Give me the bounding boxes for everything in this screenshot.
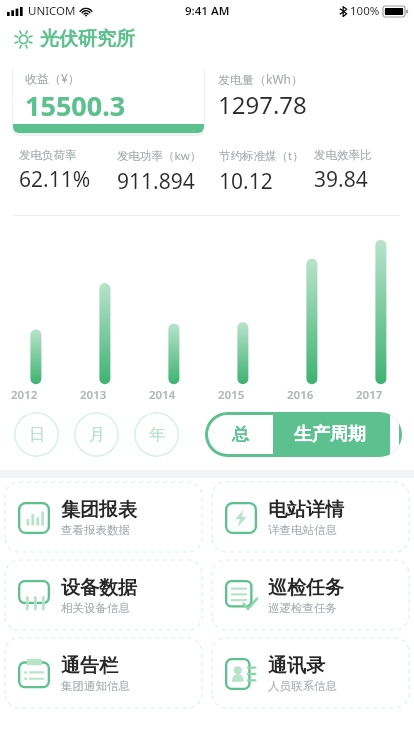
staticText: 通讯录 [268, 654, 325, 678]
staticText: 总 [232, 424, 249, 445]
staticText: 设备数据 [61, 576, 137, 600]
staticText: 发电负荷率 [19, 148, 77, 162]
button[interactable]: 总 [208, 415, 273, 454]
button[interactable]: 设备数据 [0, 556, 207, 634]
staticText: 查看报表数据 [61, 523, 130, 537]
staticText: 电站详情 [268, 498, 344, 522]
staticText: 月 [89, 425, 105, 445]
button[interactable]: 电站详情 [207, 478, 414, 556]
button[interactable]: 月 [74, 412, 119, 457]
staticText: 集团报表 [61, 498, 137, 522]
staticText: 1297.78 [218, 88, 307, 121]
button[interactable]: 日 [14, 412, 59, 457]
staticText: 15500.3 [25, 87, 126, 124]
staticText: 详查电站信息 [268, 523, 337, 537]
staticText: 2017 [356, 387, 383, 403]
staticText: 收益（¥） [25, 70, 80, 86]
button[interactable]: 生产周期 [273, 412, 402, 457]
staticText: 通告栏 [61, 654, 118, 678]
staticText: 2015 [218, 387, 245, 403]
staticText: 人员联系信息 [268, 679, 337, 693]
staticText: 日 [29, 425, 45, 445]
staticText: 911.894 [117, 167, 195, 196]
button[interactable]: 年 [134, 412, 179, 457]
button[interactable]: 收益（¥） [13, 63, 204, 133]
staticText: 发电功率（kw） [117, 148, 202, 164]
staticText: 发电效率比 [314, 148, 372, 162]
staticText: 集团通知信息 [61, 679, 130, 693]
staticText: 生产周期 [294, 423, 366, 446]
staticText: 巡检任务 [268, 576, 344, 600]
staticText: 62.11% [19, 165, 91, 194]
staticText: 巡逻检查任务 [268, 601, 337, 615]
staticText: 年 [149, 425, 165, 445]
staticText: 9:41 AM [185, 3, 230, 19]
button[interactable]: 通讯录 [207, 634, 414, 712]
staticText: 2016 [287, 387, 314, 403]
staticText: 10.12 [219, 167, 273, 196]
staticText: UNICOM [28, 3, 76, 19]
staticText: 100% [350, 3, 380, 19]
button[interactable]: 通告栏 [0, 634, 207, 712]
staticText: 2012 [11, 387, 38, 403]
staticText: 2013 [80, 387, 107, 403]
staticText: 39.84 [314, 165, 368, 194]
staticText: 发电量（kWh） [218, 71, 303, 87]
staticText: 节约标准煤（t） [219, 148, 304, 164]
staticText: 2014 [149, 387, 176, 403]
staticText: 相关设备信息 [61, 601, 130, 615]
staticText: 光伏研究所 [40, 27, 135, 51]
button[interactable]: 巡检任务 [207, 556, 414, 634]
button[interactable]: 集团报表 [0, 478, 207, 556]
